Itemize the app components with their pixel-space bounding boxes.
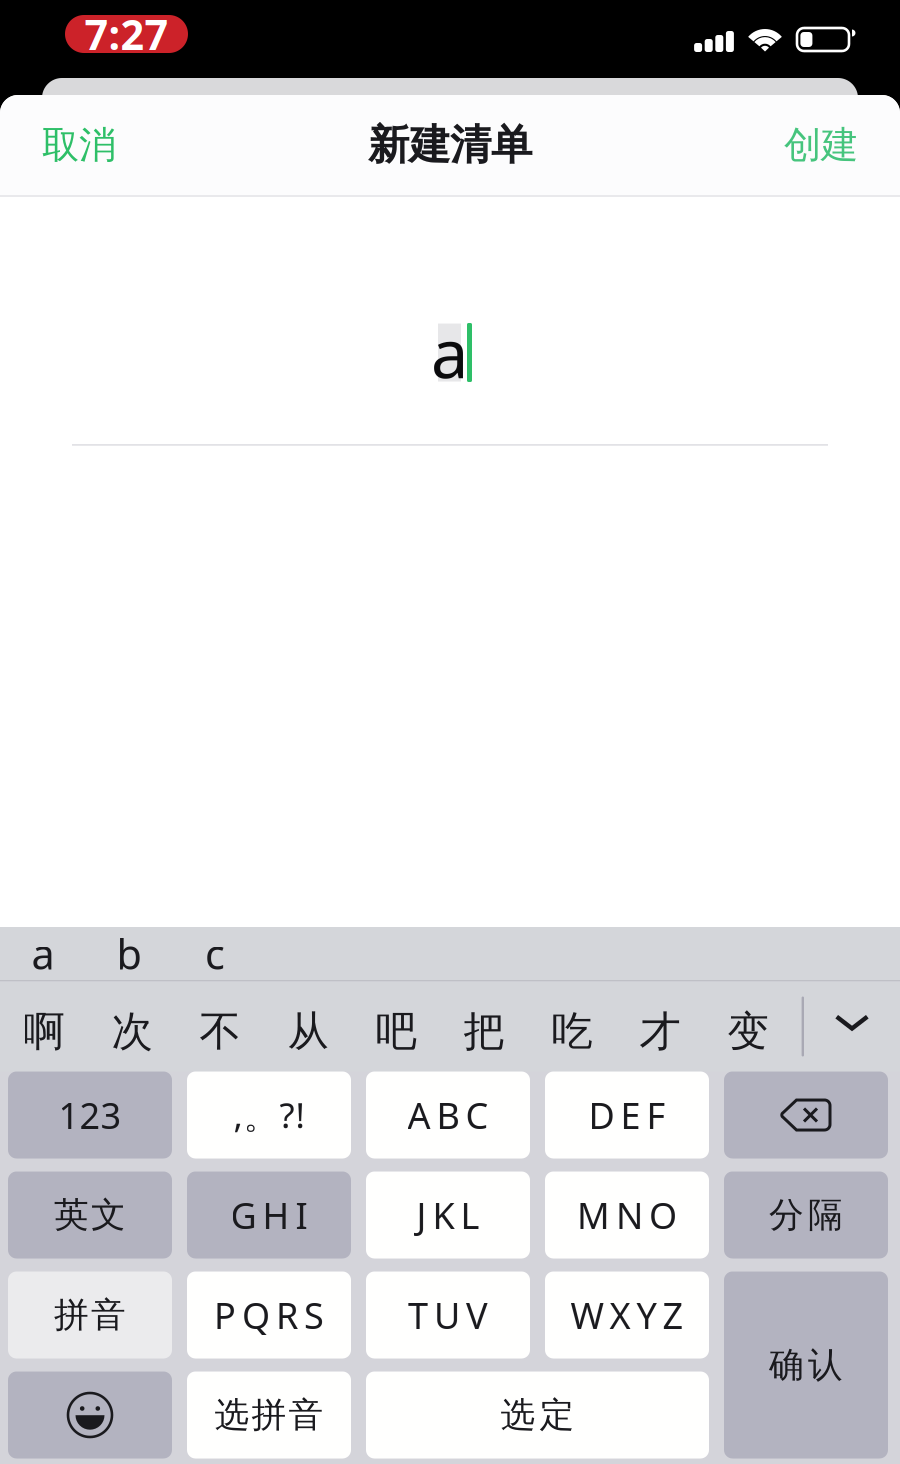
staticText: a: [431, 308, 468, 397]
staticText: TUV: [408, 1291, 488, 1339]
button[interactable]: [8, 1171, 172, 1258]
staticText: 把: [463, 1006, 504, 1057]
button[interactable]: 不: [176, 981, 264, 1071]
button[interactable]: 把: [440, 981, 528, 1071]
staticText: MNO: [577, 1191, 677, 1239]
button[interactable]: [724, 1271, 888, 1458]
staticText: 拼音: [54, 1294, 126, 1336]
staticText: WXYZ: [570, 1291, 683, 1339]
staticText: 新建清单: [368, 120, 532, 170]
button[interactable]: [8, 1071, 172, 1158]
button[interactable]: 才: [616, 981, 704, 1071]
staticText: 吧: [375, 1006, 416, 1057]
button[interactable]: 创建: [742, 95, 900, 195]
staticText: 从: [287, 1006, 328, 1057]
staticText: 次: [111, 1006, 152, 1057]
staticText: 确认: [769, 1344, 843, 1386]
staticText: 啊: [23, 1006, 64, 1057]
button[interactable]: 次: [88, 981, 176, 1071]
staticText: a: [31, 926, 54, 981]
staticText: 分隔: [769, 1194, 843, 1236]
staticText: 取消: [42, 122, 116, 168]
staticText: ABC: [407, 1091, 488, 1139]
button[interactable]: 从: [264, 981, 352, 1071]
button[interactable]: [187, 1171, 351, 1258]
button[interactable]: Delete: [724, 1071, 888, 1158]
button[interactable]: 啊: [0, 981, 88, 1071]
staticText: 7:27: [84, 7, 168, 61]
staticText: c: [205, 926, 225, 981]
button[interactable]: 吧: [352, 981, 440, 1071]
staticText: b: [116, 926, 141, 981]
button[interactable]: [366, 1271, 530, 1358]
button[interactable]: [545, 1171, 709, 1258]
staticText: 123: [58, 1091, 121, 1139]
button[interactable]: [187, 1271, 351, 1358]
button[interactable]: [724, 1171, 888, 1258]
staticText: 英文: [54, 1194, 126, 1236]
button[interactable]: 吃: [528, 981, 616, 1071]
staticText: 创建: [784, 122, 858, 168]
button[interactable]: [545, 1271, 709, 1358]
staticText: 不: [199, 1006, 240, 1057]
staticText: 吃: [551, 1006, 592, 1057]
button[interactable]: [366, 1171, 530, 1258]
staticText: 变: [727, 1006, 768, 1057]
button[interactable]: Hide candidates: [804, 981, 900, 1071]
staticText: 选定: [500, 1394, 574, 1436]
button[interactable]: 变: [704, 981, 792, 1071]
staticText: 选拼音: [214, 1394, 323, 1436]
staticText: ,。?!: [233, 1092, 304, 1138]
staticText: PQRS: [214, 1291, 324, 1339]
staticText: 才: [639, 1006, 680, 1057]
staticText: DEF: [588, 1091, 665, 1139]
staticText: GHI: [230, 1191, 307, 1239]
button[interactable]: [366, 1071, 530, 1158]
button[interactable]: [366, 1371, 709, 1458]
button[interactable]: [187, 1071, 351, 1158]
button[interactable]: [8, 1271, 172, 1358]
button[interactable]: [545, 1071, 709, 1158]
button[interactable]: Emoji: [8, 1371, 172, 1458]
button[interactable]: [187, 1371, 351, 1458]
button[interactable]: 取消: [0, 95, 158, 195]
staticText: JKL: [416, 1191, 479, 1239]
